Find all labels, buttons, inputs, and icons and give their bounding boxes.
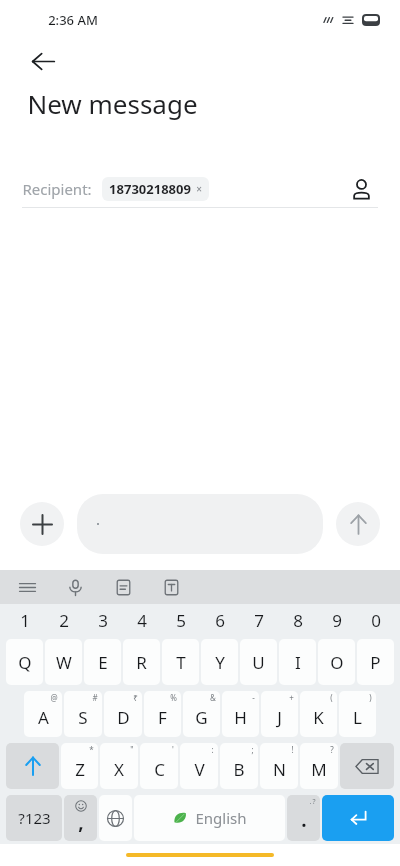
staticText: E [98, 651, 108, 674]
button[interactable]: 5 [162, 604, 199, 636]
button[interactable]: V [180, 743, 218, 789]
staticText: : [211, 744, 214, 755]
staticText: * [89, 744, 94, 755]
button[interactable]: Choose contact [344, 172, 378, 206]
staticText: M [311, 758, 327, 781]
staticText: English [195, 808, 247, 828]
staticText: & [210, 692, 216, 703]
staticText: J [277, 706, 282, 729]
staticText: F [158, 706, 167, 729]
staticText: W [56, 651, 72, 674]
button[interactable]: Y [201, 639, 238, 685]
staticText: # [92, 692, 98, 703]
button[interactable]: Shift [6, 743, 59, 789]
button[interactable]: Send message [336, 502, 380, 546]
button[interactable]: A [24, 691, 62, 737]
button[interactable]: O [318, 639, 355, 685]
staticText: C [154, 758, 165, 781]
button[interactable]: X [100, 743, 138, 789]
staticText: K [313, 706, 324, 729]
staticText: % [170, 692, 177, 703]
button[interactable]: Menu [14, 574, 40, 600]
button[interactable]: R [123, 639, 160, 685]
button[interactable]: J [261, 691, 298, 737]
staticText: 9 [332, 609, 342, 632]
button[interactable]: Text editing [158, 574, 184, 600]
button[interactable]: K [300, 691, 337, 737]
button[interactable]: Q [6, 639, 43, 685]
staticText: 5 [176, 609, 186, 632]
button[interactable]: Z [61, 743, 98, 789]
button[interactable]: H [222, 691, 259, 737]
staticText: 4 [137, 609, 147, 632]
staticText: 3 [98, 609, 108, 632]
staticText: . [301, 807, 307, 833]
staticText: V [194, 758, 205, 781]
button[interactable]: Back [22, 40, 64, 82]
staticText: New message [27, 86, 198, 121]
button[interactable]: 3 [84, 604, 121, 636]
button[interactable]: 8 [279, 604, 316, 636]
button[interactable]: M [300, 743, 338, 789]
button[interactable]: B [220, 743, 258, 789]
button[interactable]: Add attachment [20, 502, 64, 546]
button[interactable]: Enter [322, 795, 394, 841]
button[interactable]: 18730218809 [102, 177, 209, 201]
staticText: @ [50, 692, 58, 703]
button[interactable]: P [357, 639, 394, 685]
button[interactable]: Change language [99, 795, 132, 841]
staticText: 2:36 AM [48, 11, 98, 29]
staticText: O [330, 651, 344, 674]
button[interactable]: Voice input [62, 574, 88, 600]
button[interactable]: 6 [201, 604, 238, 636]
button[interactable]: English [134, 795, 285, 841]
staticText: P [370, 651, 381, 674]
staticText: 7 [254, 609, 264, 632]
staticText: ( [330, 692, 333, 703]
button[interactable]: U [240, 639, 277, 685]
staticText: D [117, 706, 130, 729]
staticText: U [252, 651, 265, 674]
staticText: B [233, 758, 245, 781]
staticText: 0 [371, 609, 381, 632]
button[interactable]: L [339, 691, 376, 737]
button[interactable]: 1 [6, 604, 43, 636]
staticText: Q [18, 651, 32, 674]
button[interactable]: Comma and emoji [64, 795, 97, 841]
staticText: - [252, 692, 255, 703]
button[interactable]: I [279, 639, 316, 685]
button[interactable]: T [162, 639, 199, 685]
button[interactable]: 4 [123, 604, 160, 636]
button[interactable]: 0 [357, 604, 394, 636]
button[interactable]: E [84, 639, 121, 685]
button[interactable]: ?123 [6, 795, 62, 841]
staticText: ; [251, 744, 254, 755]
button[interactable] [77, 494, 323, 554]
staticText: + [289, 692, 294, 703]
staticText: ?123 [18, 808, 51, 828]
button[interactable]: N [260, 743, 298, 789]
button[interactable]: 2 [45, 604, 82, 636]
button[interactable]: S [64, 691, 102, 737]
staticText: ₹ [133, 692, 138, 703]
staticText: R [136, 651, 147, 674]
staticText: G [195, 706, 208, 729]
staticText: ! [291, 744, 294, 755]
button[interactable]: 7 [240, 604, 277, 636]
button[interactable]: W [45, 639, 82, 685]
button[interactable]: G [183, 691, 220, 737]
button[interactable]: C [140, 743, 178, 789]
button[interactable]: D [104, 691, 142, 737]
button[interactable]: Clipboard [110, 574, 136, 600]
staticText: 18730218809 [109, 180, 191, 198]
staticText: ? [330, 744, 334, 755]
staticText: S [78, 706, 88, 729]
staticText: Y [215, 651, 225, 674]
staticText: ) [369, 692, 372, 703]
button[interactable]: Backspace [340, 743, 394, 789]
button[interactable]: 9 [318, 604, 355, 636]
button[interactable]: Period and symbols [287, 795, 320, 841]
button[interactable]: F [144, 691, 181, 737]
staticText: N [273, 758, 286, 781]
staticText: 2 [59, 609, 69, 632]
